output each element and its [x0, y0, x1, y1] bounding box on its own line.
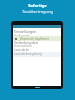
staticText: Tonübertragung — [22, 9, 53, 14]
staticText: Sofortige — [28, 3, 47, 8]
staticText: Audiogerät — [14, 34, 30, 38]
button[interactable]: Bluetooth Kopfhörer — [13, 36, 61, 41]
staticText: Lautstärke — [14, 48, 29, 52]
staticText: Verbindung aktiv — [14, 41, 38, 45]
staticText: Einstellungen — [14, 29, 37, 34]
staticText: Lautstärkeregelung — [14, 52, 42, 56]
staticText: Automatisch — [14, 44, 32, 48]
staticText: Bluetooth Kopfhörer — [20, 37, 50, 41]
